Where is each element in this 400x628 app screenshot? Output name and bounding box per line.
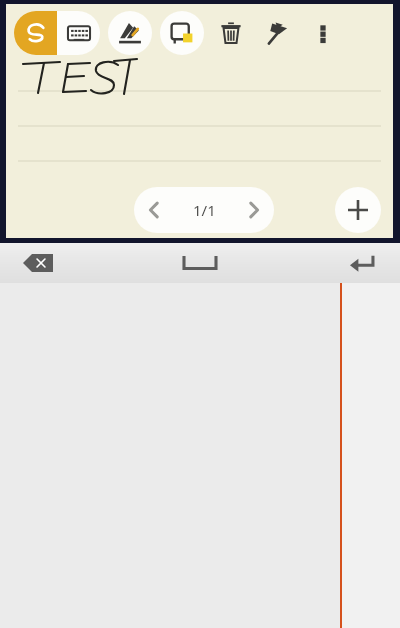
button[interactable]: Enter [342,248,386,278]
button[interactable]: Add page [335,187,381,233]
button[interactable]: Pin [260,16,294,50]
button[interactable]: Previous page [134,187,174,233]
button[interactable]: Handwriting mode [14,11,57,55]
staticText: 1/1 [193,200,216,220]
button[interactable]: Delete [214,16,248,50]
button[interactable]: Next page [234,187,274,233]
button[interactable]: Pen settings [108,11,152,55]
button[interactable]: Keyboard mode [57,11,100,55]
button[interactable]: Space [175,248,225,278]
button[interactable]: Insert shape [160,11,204,55]
button[interactable]: Backspace [16,248,60,278]
button[interactable]: More options [306,16,340,50]
